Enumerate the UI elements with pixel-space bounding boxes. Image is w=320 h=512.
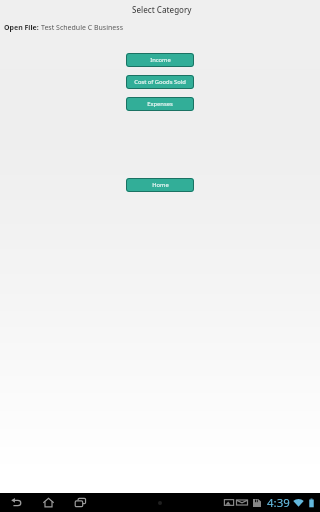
button[interactable]: Income: [126, 53, 194, 67]
staticText: Open File:: [4, 23, 39, 33]
button[interactable]: Status bar: notifications, clock, wifi a…: [224, 493, 320, 512]
staticText: 4:39: [267, 495, 290, 511]
button[interactable]: Home: [32, 493, 64, 512]
button[interactable]: Recent apps: [64, 493, 96, 512]
staticText: Test Schedule C Business: [41, 23, 123, 33]
staticText: Home: [152, 181, 169, 189]
staticText: Expenses: [147, 100, 173, 108]
button[interactable]: Back: [0, 493, 32, 512]
staticText: Income: [150, 56, 171, 64]
button[interactable]: Expenses: [126, 97, 194, 111]
staticText: Cost of Goods Sold: [134, 78, 186, 86]
button[interactable]: Cost of Goods Sold: [126, 75, 194, 89]
staticText: Select Category: [132, 4, 192, 15]
button[interactable]: Home: [126, 178, 194, 192]
